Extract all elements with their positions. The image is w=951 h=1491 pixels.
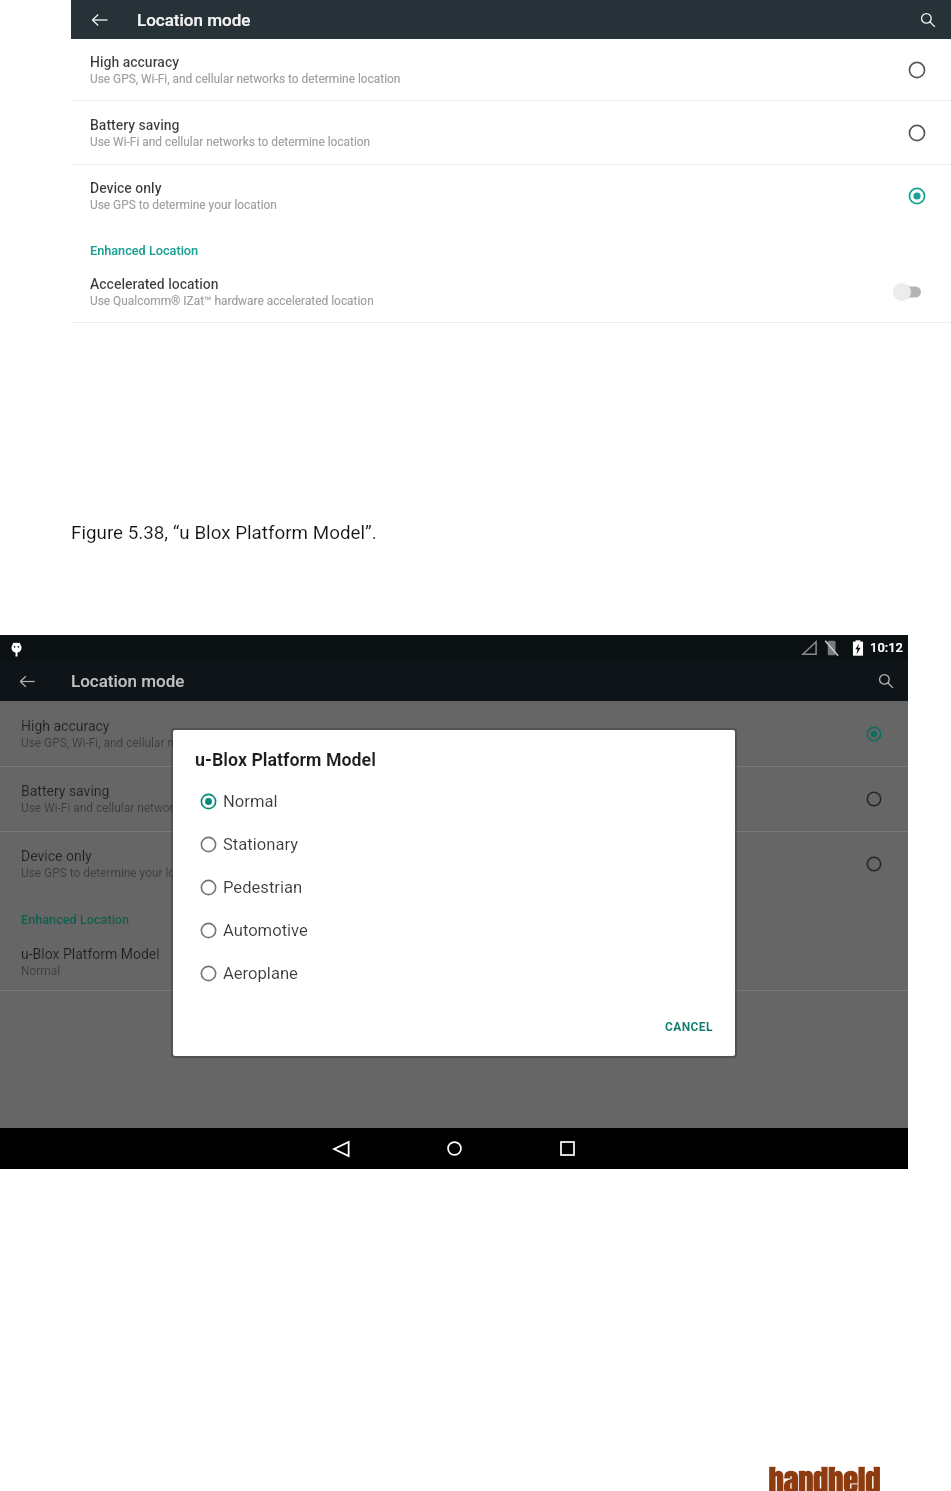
staticText: Use GPS, Wi-Fi, and cellular networks to… (21, 736, 332, 750)
staticText: Device only (21, 848, 92, 864)
staticText: Figure 5.38, “u Blox Platform Model”. (71, 522, 377, 544)
staticText: Automotive (223, 921, 308, 940)
staticText: Battery saving (90, 117, 180, 133)
staticText: Accelerated location (90, 276, 219, 292)
staticText: Use GPS, Wi-Fi, and cellular networks to… (90, 72, 401, 86)
staticText: 10:12 (870, 640, 903, 655)
staticText: Location mode (71, 671, 185, 691)
button[interactable]: High accuracy (0, 701, 908, 767)
staticText: Use GPS to determine your location (21, 866, 208, 880)
button[interactable]: Battery saving (0, 767, 908, 832)
button[interactable]: Search (873, 668, 899, 694)
button[interactable]: Back (316, 1128, 366, 1169)
button[interactable]: Back (87, 7, 113, 33)
staticText: Use GPS to determine your location (90, 198, 277, 212)
staticText: Use Qualcomm® IZat™ hardware accelerated… (90, 294, 374, 308)
staticText: Use Wi-Fi and cellular networks to deter… (21, 801, 302, 815)
button[interactable]: Home (429, 1128, 479, 1169)
staticText: u-Blox Platform Model (195, 749, 376, 770)
staticText: Normal (223, 792, 278, 811)
button[interactable]: Aeroplane (173, 952, 735, 995)
staticText: handheld (768, 1459, 880, 1491)
staticText: Enhanced Location (21, 912, 130, 927)
staticText: Location mode (137, 10, 251, 30)
staticText: Normal (21, 964, 61, 978)
button[interactable]: Search (915, 7, 941, 33)
staticText: CANCEL (665, 1020, 713, 1034)
staticText: Stationary (223, 835, 299, 854)
button[interactable]: CANCEL (657, 1012, 721, 1042)
staticText: Enhanced Location (90, 243, 199, 258)
button[interactable]: Recents (542, 1128, 592, 1169)
staticText: Device only (90, 180, 162, 196)
button[interactable]: u-Blox Platform Model (0, 934, 908, 991)
button[interactable]: Automotive (173, 909, 735, 952)
button[interactable]: Pedestrian (173, 866, 735, 909)
staticText: Pedestrian (223, 878, 303, 897)
button[interactable]: High accuracy (71, 39, 951, 101)
button[interactable]: Device only (0, 832, 908, 896)
button[interactable]: Device only (71, 165, 951, 227)
button[interactable]: Battery saving (71, 101, 951, 165)
staticText: Use Wi-Fi and cellular networks to deter… (90, 135, 371, 149)
button[interactable]: Normal (173, 780, 735, 823)
staticText: u-Blox Platform Model (21, 946, 160, 962)
button[interactable]: Accelerated location (71, 267, 951, 323)
button[interactable]: Stationary (173, 823, 735, 866)
staticText: Battery saving (21, 783, 110, 799)
button[interactable]: Back (14, 668, 40, 694)
staticText: High accuracy (90, 54, 180, 70)
staticText: High accuracy (21, 718, 110, 734)
staticText: Aeroplane (223, 964, 298, 983)
